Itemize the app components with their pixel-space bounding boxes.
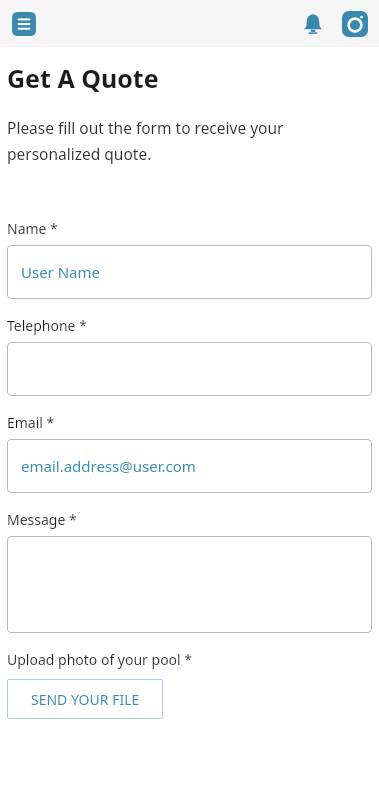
staticText: Message * xyxy=(7,510,77,529)
button[interactable] xyxy=(7,342,372,396)
staticText: Name * xyxy=(7,219,58,238)
button[interactable]: SEND YOUR FILE xyxy=(7,679,163,719)
staticText: SEND YOUR FILE xyxy=(31,690,140,709)
staticText: Please fill out the form to receive your… xyxy=(7,117,372,165)
button[interactable]: Menu xyxy=(8,8,40,40)
button[interactable]: email.address@user.com xyxy=(7,439,372,493)
staticText: User Name xyxy=(21,262,101,282)
button[interactable]: Notifications xyxy=(295,6,331,42)
staticText: Get A Quote xyxy=(7,61,159,95)
staticText: Upload photo of your pool * xyxy=(7,650,193,669)
staticText: email.address@user.com xyxy=(21,456,196,476)
staticText: Telephone * xyxy=(7,316,87,335)
button[interactable] xyxy=(7,536,372,633)
staticText: Email * xyxy=(7,413,55,432)
button[interactable]: Instagram xyxy=(337,6,373,42)
button[interactable]: User Name xyxy=(7,245,372,299)
